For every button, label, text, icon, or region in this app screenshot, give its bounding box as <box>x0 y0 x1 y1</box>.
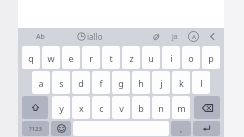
staticText: l <box>200 77 203 89</box>
staticText: ja <box>172 32 178 42</box>
button[interactable]: Attach <box>151 28 161 45</box>
button[interactable]: Enter <box>193 121 220 136</box>
staticText: i <box>170 52 173 64</box>
button[interactable]: t <box>102 46 120 69</box>
staticText: v <box>119 102 124 114</box>
button[interactable]: p <box>202 46 220 69</box>
button[interactable]: e <box>62 46 80 69</box>
button[interactable]: Backspace <box>194 96 220 119</box>
staticText: ?123 <box>29 125 42 133</box>
button[interactable]: u <box>142 46 160 69</box>
staticText: p <box>208 52 214 64</box>
button[interactable]: Back <box>208 28 217 45</box>
staticText: j <box>160 77 163 89</box>
button[interactable]: m <box>172 96 190 119</box>
button[interactable]: ja <box>172 28 178 45</box>
button[interactable]: k <box>172 71 190 94</box>
staticText: m <box>177 102 186 114</box>
staticText: r <box>89 52 93 64</box>
button[interactable]: Symbols <box>22 121 49 136</box>
staticText: , <box>180 123 183 134</box>
button[interactable]: v <box>112 96 130 119</box>
button[interactable]: h <box>132 71 150 94</box>
button[interactable]: j <box>152 71 170 94</box>
staticText: a <box>38 77 44 89</box>
button[interactable]: Shift <box>22 96 48 119</box>
staticText: q <box>28 52 34 64</box>
button[interactable]: q <box>22 46 40 69</box>
staticText: x <box>79 102 84 114</box>
button[interactable]: g <box>112 71 130 94</box>
button[interactable]: c <box>92 96 110 119</box>
staticText: A <box>192 33 196 41</box>
staticText: g <box>118 77 124 89</box>
staticText: n <box>158 102 164 114</box>
button[interactable]: Comma <box>171 121 191 136</box>
button[interactable]: r <box>82 46 100 69</box>
staticText: k <box>179 77 184 89</box>
staticText: w <box>47 52 55 64</box>
staticText: c <box>99 102 104 114</box>
button[interactable]: Autocorrect <box>188 28 199 45</box>
button[interactable]: Emoji <box>51 121 71 136</box>
staticText: u <box>148 52 154 64</box>
staticText: o <box>188 52 194 64</box>
staticText: e <box>68 52 74 64</box>
button[interactable]: o <box>182 46 200 69</box>
button[interactable]: z <box>122 46 140 69</box>
staticText: y <box>59 102 64 114</box>
staticText: z <box>129 52 134 64</box>
staticText: s <box>59 77 64 89</box>
button[interactable]: Ab <box>36 28 45 45</box>
staticText: iallo <box>87 31 103 42</box>
button[interactable]: y <box>52 96 70 119</box>
button[interactable]: x <box>72 96 90 119</box>
button[interactable]: iallo <box>77 28 103 45</box>
button[interactable]: b <box>132 96 150 119</box>
staticText: b <box>138 102 144 114</box>
button[interactable]: s <box>52 71 70 94</box>
staticText: Ab <box>36 32 45 42</box>
button[interactable]: a <box>32 71 50 94</box>
staticText: t <box>109 52 113 64</box>
button[interactable]: d <box>72 71 90 94</box>
button[interactable]: f <box>92 71 110 94</box>
staticText: h <box>138 77 144 89</box>
staticText: f <box>99 77 103 89</box>
button[interactable]: i <box>162 46 180 69</box>
button[interactable]: l <box>192 71 210 94</box>
button[interactable]: n <box>152 96 170 119</box>
button[interactable]: w <box>42 46 60 69</box>
staticText: d <box>78 77 84 89</box>
